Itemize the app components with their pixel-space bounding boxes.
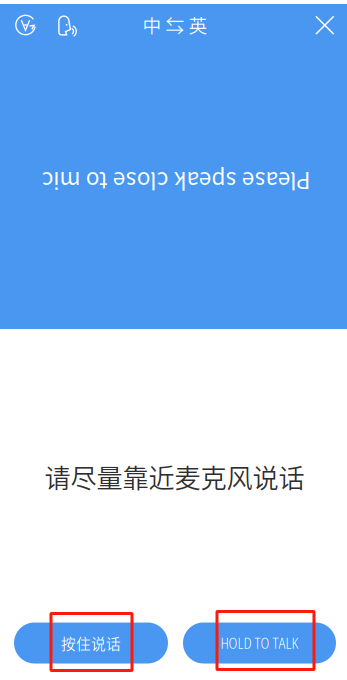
staticText: 请尽量靠近麦克风说话 (44, 458, 304, 495)
staticText: 按住说话 (61, 632, 121, 654)
button[interactable]: HOLD TO TALK (183, 622, 336, 663)
button[interactable]: Close (305, 5, 345, 45)
button[interactable]: Speak aloud (48, 5, 88, 45)
staticText: 中 ⇆ 英 (142, 11, 207, 38)
button[interactable]: 按住说话 (14, 622, 168, 663)
button[interactable]: Swap translation direction (5, 5, 45, 45)
button[interactable]: Chinese to English (129, 5, 221, 45)
staticText: HOLD TO TALK (220, 633, 298, 653)
staticText: Please speak close to mic (41, 166, 310, 198)
